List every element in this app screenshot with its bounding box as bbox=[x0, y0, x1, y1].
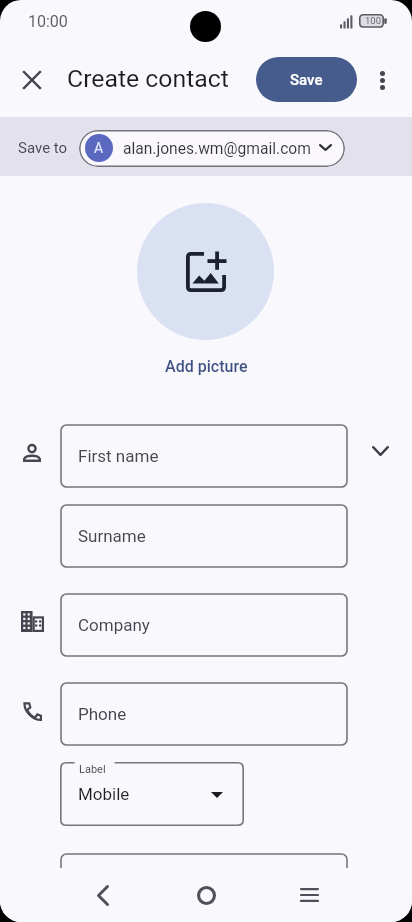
staticText: Company bbox=[78, 615, 150, 635]
button[interactable]: Home bbox=[182, 871, 230, 919]
button[interactable]: Phone bbox=[60, 682, 348, 746]
staticText: Mobile bbox=[78, 784, 130, 804]
button[interactable]: Add picture bbox=[137, 203, 274, 340]
staticText: Label bbox=[79, 763, 106, 776]
button[interactable] bbox=[60, 853, 348, 917]
button[interactable]: More options bbox=[358, 56, 406, 104]
button[interactable]: A bbox=[79, 130, 345, 167]
button[interactable]: Company bbox=[60, 593, 348, 657]
button[interactable]: Back bbox=[79, 871, 127, 919]
button[interactable]: Surname bbox=[60, 504, 348, 568]
staticText: Create contact bbox=[67, 64, 229, 93]
button[interactable]: Company bbox=[9, 598, 55, 644]
staticText: 100 bbox=[365, 15, 382, 26]
staticText: A bbox=[94, 140, 104, 156]
staticText: Save bbox=[290, 71, 323, 89]
button[interactable]: Save bbox=[256, 57, 357, 102]
staticText: First name bbox=[78, 446, 159, 466]
button[interactable]: Expand name fields bbox=[357, 428, 403, 474]
button[interactable]: First name bbox=[60, 424, 348, 488]
button[interactable]: Close bbox=[8, 56, 56, 104]
staticText: Phone bbox=[78, 704, 127, 724]
button[interactable]: Phone bbox=[9, 688, 55, 734]
staticText: Surname bbox=[78, 526, 146, 546]
button[interactable]: Recent apps bbox=[285, 871, 333, 919]
button[interactable]: Add picture bbox=[165, 357, 248, 376]
staticText: 10:00 bbox=[28, 12, 68, 31]
button[interactable]: Label Mobile bbox=[60, 762, 244, 826]
button[interactable]: Name bbox=[9, 430, 55, 476]
staticText: alan.jones.wm@gmail.com bbox=[123, 140, 311, 158]
staticText: Save to bbox=[18, 139, 68, 157]
